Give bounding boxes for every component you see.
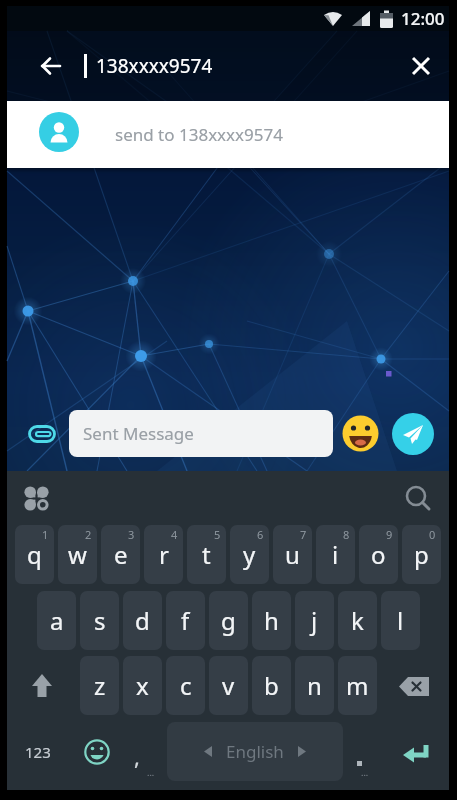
staticText: 8 — [343, 527, 350, 542]
staticText: 1 — [42, 527, 49, 542]
staticText: z — [94, 669, 106, 702]
button[interactable]: i — [316, 525, 355, 584]
staticText: i — [332, 538, 339, 571]
button[interactable]: g — [209, 591, 248, 650]
button[interactable]: j — [295, 591, 334, 650]
button[interactable]: c — [166, 656, 205, 715]
button[interactable] — [24, 486, 49, 511]
staticText: 123 — [25, 742, 51, 762]
button[interactable]: s — [80, 591, 119, 650]
staticText: 138xxxx9574 — [96, 53, 213, 79]
button[interactable] — [342, 415, 379, 452]
staticText: w — [68, 538, 87, 571]
staticText: a — [50, 604, 64, 637]
staticText: l — [397, 604, 404, 637]
button[interactable]: , — [117, 722, 157, 781]
button[interactable] — [396, 722, 437, 781]
staticText: Sent Message — [83, 422, 194, 445]
staticText: p — [414, 538, 429, 571]
staticText: 6 — [257, 527, 264, 542]
button[interactable] — [393, 31, 449, 101]
button[interactable]: y — [230, 525, 269, 584]
staticText: send to 138xxxx9574 — [115, 123, 283, 146]
button[interactable] — [77, 722, 117, 781]
staticText: English — [226, 740, 284, 763]
staticText: j — [311, 604, 318, 637]
button[interactable]: h — [252, 591, 291, 650]
button[interactable] — [405, 485, 431, 511]
staticText: e — [114, 538, 128, 571]
staticText: y — [243, 538, 256, 571]
staticText: m — [346, 669, 369, 702]
button[interactable]: ... — [349, 722, 369, 781]
button[interactable]: x — [123, 656, 162, 715]
button[interactable]: p — [402, 525, 441, 584]
button[interactable]: z — [80, 656, 119, 715]
staticText: n — [307, 669, 322, 702]
button[interactable] — [23, 31, 79, 101]
staticText: 4 — [171, 527, 178, 542]
button[interactable]: English — [167, 722, 343, 781]
staticText: t — [202, 538, 211, 571]
staticText: s — [94, 604, 106, 637]
staticText: h — [264, 604, 279, 637]
button[interactable]: k — [338, 591, 377, 650]
staticText: v — [222, 669, 235, 702]
staticText: c — [180, 669, 192, 702]
staticText: g — [221, 604, 236, 637]
staticText: f — [181, 604, 190, 637]
button[interactable] — [28, 425, 56, 443]
staticText: 9 — [386, 527, 393, 542]
button[interactable]: t — [187, 525, 226, 584]
button[interactable]: b — [252, 656, 291, 715]
staticText: o — [371, 538, 386, 571]
button[interactable]: u — [273, 525, 312, 584]
button[interactable]: m — [338, 656, 377, 715]
button[interactable]: q — [15, 525, 54, 584]
staticText: 3 — [128, 527, 135, 542]
button[interactable] — [27, 671, 57, 701]
staticText: k — [351, 604, 364, 637]
button[interactable] — [392, 413, 434, 455]
button[interactable]: send to 138xxxx9574 — [7, 101, 449, 168]
button[interactable]: l — [381, 591, 420, 650]
staticText: x — [136, 669, 149, 702]
button[interactable] — [398, 670, 430, 702]
staticText: 12:00 — [401, 7, 445, 30]
staticText: q — [27, 538, 42, 571]
staticText: 7 — [300, 527, 307, 542]
staticText: ... — [147, 766, 155, 778]
button[interactable]: a — [37, 591, 76, 650]
staticText: 5 — [214, 527, 221, 542]
button[interactable]: Sent Message — [69, 410, 333, 457]
button[interactable]: v — [209, 656, 248, 715]
button[interactable]: n — [295, 656, 334, 715]
staticText: , — [134, 741, 140, 771]
staticText: ... — [361, 766, 369, 778]
staticText: u — [285, 538, 300, 571]
staticText: b — [264, 669, 279, 702]
button[interactable]: 123 — [7, 722, 69, 781]
button[interactable]: e — [101, 525, 140, 584]
button[interactable]: o — [359, 525, 398, 584]
button[interactable]: r — [144, 525, 183, 584]
staticText: 0 — [429, 527, 436, 542]
button[interactable]: w — [58, 525, 97, 584]
staticText: 2 — [85, 527, 92, 542]
button[interactable]: f — [166, 591, 205, 650]
staticText: d — [135, 604, 150, 637]
staticText: r — [159, 538, 169, 571]
button[interactable]: d — [123, 591, 162, 650]
